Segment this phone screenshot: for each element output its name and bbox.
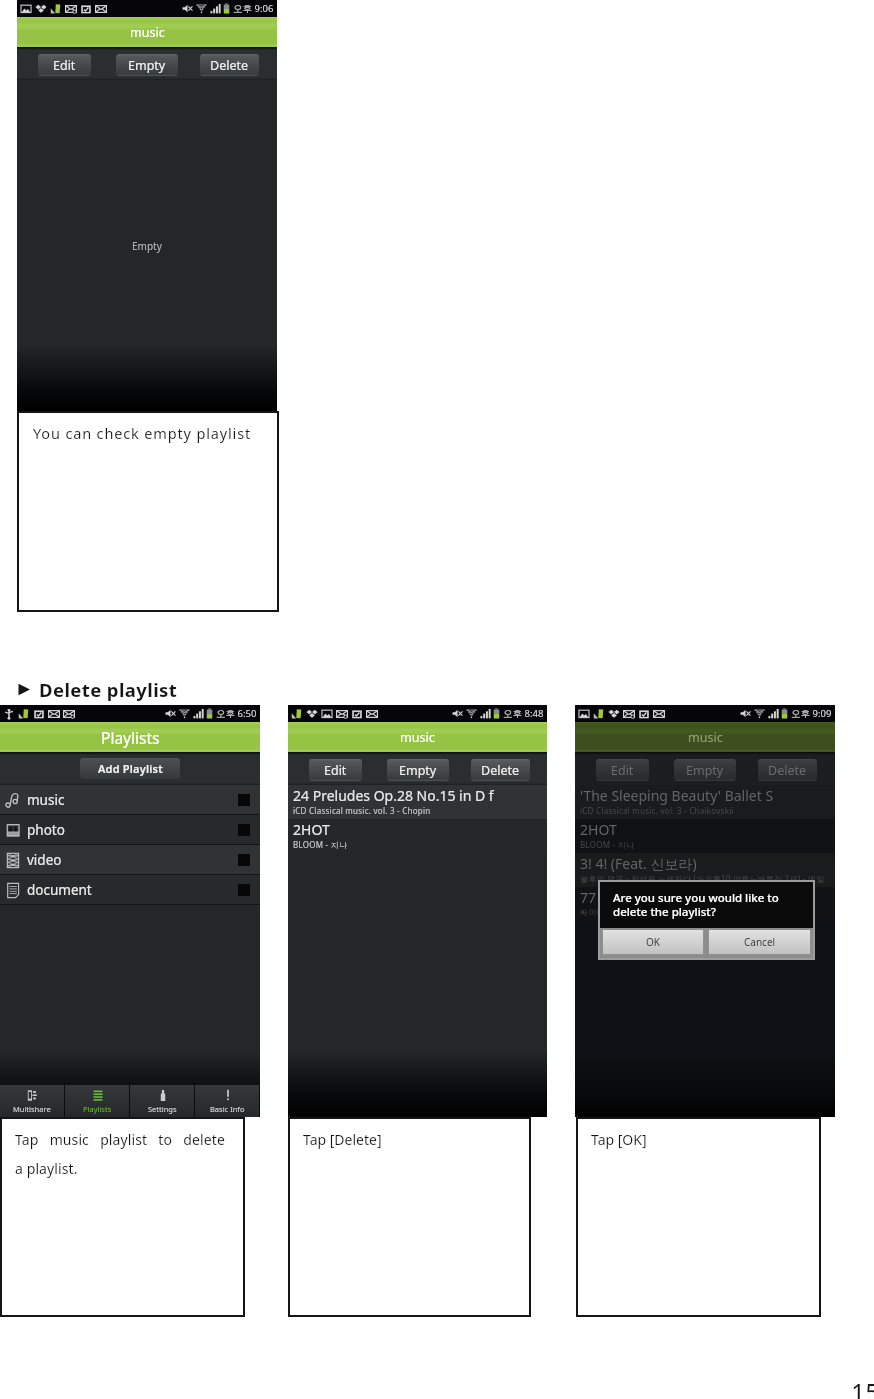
button[interactable]: You can check empty playlist <box>17 411 279 612</box>
staticText: 싸이버 <box>580 907 605 917</box>
staticText: 2HOT <box>580 820 617 839</box>
staticText: Edit <box>53 57 76 74</box>
button[interactable]: Edit <box>309 759 362 781</box>
button[interactable]: Delete <box>471 759 530 781</box>
staticText: You can check empty playlist <box>33 423 252 443</box>
staticText: 2HOT <box>293 820 330 839</box>
staticText: Settings <box>148 1104 177 1114</box>
staticText: 오후 8:48 <box>503 707 544 720</box>
button[interactable]: Edit <box>596 759 649 781</box>
button[interactable]: Tap [Delete] <box>288 1117 531 1317</box>
staticText: Edit <box>611 762 634 779</box>
staticText: iCD Classical music. vol. 3 - Chaikovski… <box>580 805 734 816</box>
staticText: iCD Classical music. vol. 3 - Chopin <box>293 805 431 816</box>
staticText: Edit <box>324 762 347 779</box>
staticText: 오후 6:50 <box>216 707 257 720</box>
button[interactable]: 3! 4! (Feat. 신보라) <box>580 854 831 884</box>
button[interactable]: Edit <box>38 54 91 76</box>
staticText: photo <box>27 821 65 839</box>
staticText: Empty <box>686 762 724 779</box>
button[interactable]: Tap [OK] <box>576 1117 821 1317</box>
button[interactable]: 24 Preludes Op.28 No.15 in D f <box>293 786 543 816</box>
button[interactable]: photo <box>0 815 260 845</box>
button[interactable]: document <box>0 875 260 905</box>
button[interactable]: Multishare <box>0 1085 64 1117</box>
staticText: Are you sure you would like to delete th… <box>613 890 779 919</box>
staticText: OK <box>646 935 660 949</box>
staticText: Playlists <box>101 727 160 748</box>
button[interactable]: Delete <box>758 759 817 781</box>
staticText: Delete <box>481 762 520 779</box>
staticText: 3! 4! (Feat. 신보라) <box>580 854 697 873</box>
staticText: 불후의 명곡 - 전설을 노래하다 (가요톱10 여름노래특집 1편) - 에일… <box>580 873 831 884</box>
staticText: music <box>27 791 65 809</box>
button[interactable]: Basic Info <box>195 1085 259 1117</box>
staticText: Delete <box>768 762 807 779</box>
staticText: 77 <box>580 888 597 907</box>
button[interactable]: Tap music playlist to delete <box>0 1117 245 1317</box>
button[interactable]: 77 <box>580 888 831 917</box>
staticText: Add Playlist <box>98 761 163 776</box>
staticText: Empty <box>132 239 162 253</box>
staticText: a playlist. <box>15 1159 78 1178</box>
staticText: 'The Sleeping Beauty' Ballet S <box>580 786 774 805</box>
button[interactable]: music <box>0 785 260 815</box>
button[interactable]: Cancel <box>708 929 811 955</box>
button[interactable]: Empty <box>674 759 736 781</box>
staticText: video <box>27 851 62 869</box>
staticText: 24 Preludes Op.28 No.15 in D f <box>293 786 494 805</box>
button[interactable]: 'The Sleeping Beauty' Ballet S <box>580 786 831 816</box>
staticText: 오후 9:09 <box>791 707 832 720</box>
button[interactable]: Empty <box>387 759 449 781</box>
button[interactable]: OK <box>602 929 704 955</box>
staticText: Tap music playlist to delete <box>15 1130 225 1149</box>
staticText: Tap [Delete] <box>303 1130 382 1149</box>
staticText: BLOOM - 지나 <box>580 839 635 850</box>
button[interactable]: 2HOT <box>580 820 831 850</box>
button[interactable]: Add Playlist <box>80 758 180 779</box>
button[interactable]: Settings <box>130 1085 194 1117</box>
button[interactable]: video <box>0 845 260 875</box>
staticText: 오후 9:06 <box>233 2 274 15</box>
staticText: Empty <box>399 762 437 779</box>
staticText: music <box>688 729 723 746</box>
staticText: document <box>27 881 92 899</box>
staticText: music <box>130 24 165 41</box>
staticText: Empty <box>128 57 166 74</box>
staticText: Basic Info <box>210 1104 245 1114</box>
button[interactable]: Playlists <box>65 1085 129 1117</box>
staticText: Multishare <box>13 1104 51 1114</box>
staticText: Delete playlist <box>39 677 178 702</box>
button[interactable]: Delete <box>200 54 259 76</box>
staticText: Playlists <box>83 1104 112 1114</box>
button[interactable]: Empty <box>116 54 178 76</box>
button[interactable]: 2HOT <box>293 820 543 850</box>
staticText: music <box>400 729 435 746</box>
staticText: 15 <box>851 1375 874 1399</box>
staticText: Cancel <box>744 935 776 949</box>
staticText: Tap [OK] <box>591 1130 647 1149</box>
staticText: Delete <box>210 57 249 74</box>
staticText: BLOOM - 지나 <box>293 839 348 850</box>
